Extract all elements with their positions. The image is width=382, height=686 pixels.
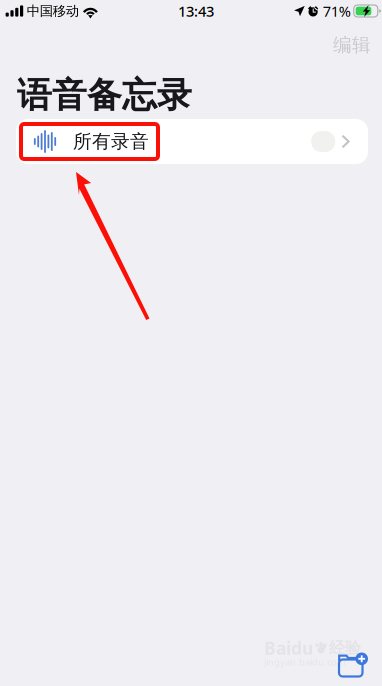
staticText: 经验 (329, 638, 361, 658)
staticText: jingyan.baidu.com (264, 656, 346, 668)
staticText: 所有录音 (73, 130, 149, 153)
staticText: Baidu (264, 636, 313, 659)
button[interactable]: 编辑 (324, 26, 380, 63)
staticText: 中国移动 (27, 3, 79, 19)
staticText: 71% (323, 1, 351, 21)
staticText: 13:43 (178, 1, 214, 21)
button[interactable]: 所有录音 (16, 119, 368, 164)
staticText: 编辑 (333, 33, 371, 56)
staticText: 语音备忘录 (17, 74, 192, 117)
